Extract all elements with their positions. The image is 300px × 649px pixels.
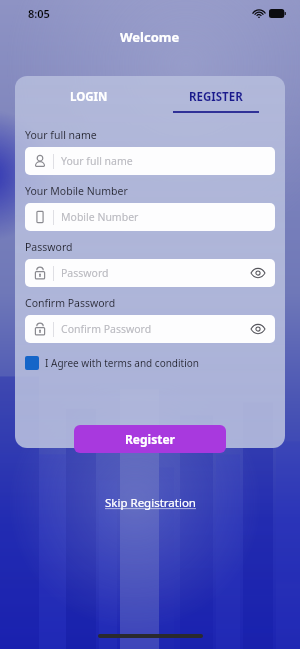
staticText: Welcome xyxy=(120,28,180,46)
button[interactable]: LOGIN xyxy=(27,76,150,114)
staticText: Password xyxy=(61,266,249,280)
button[interactable]: Mobile Number xyxy=(25,203,275,231)
staticText: Your full name xyxy=(25,128,97,142)
button[interactable]: Show password xyxy=(249,264,267,282)
staticText: Your full name xyxy=(61,154,267,168)
button[interactable]: REGISTER xyxy=(154,76,277,114)
button[interactable]: I Agree with terms and condition xyxy=(25,356,200,370)
button[interactable]: Skip Registration xyxy=(99,492,202,514)
staticText: Password xyxy=(25,240,73,254)
staticText: Confirm Password xyxy=(25,296,116,310)
staticText: REGISTER xyxy=(189,89,243,105)
staticText: 8:05 xyxy=(28,6,50,21)
button[interactable]: Confirm Password xyxy=(25,315,275,343)
staticText: Your Mobile Number xyxy=(25,184,128,198)
staticText: LOGIN xyxy=(70,89,108,105)
staticText: Skip Registration xyxy=(105,495,196,511)
button[interactable]: Show password xyxy=(249,320,267,338)
staticText: Register xyxy=(125,431,175,447)
staticText: I Agree with terms and condition xyxy=(45,356,200,370)
button[interactable]: Register xyxy=(74,425,226,453)
staticText: Confirm Password xyxy=(61,322,249,336)
button[interactable]: Your full name xyxy=(25,147,275,175)
button[interactable]: Password xyxy=(25,259,275,287)
staticText: Mobile Number xyxy=(61,210,267,224)
